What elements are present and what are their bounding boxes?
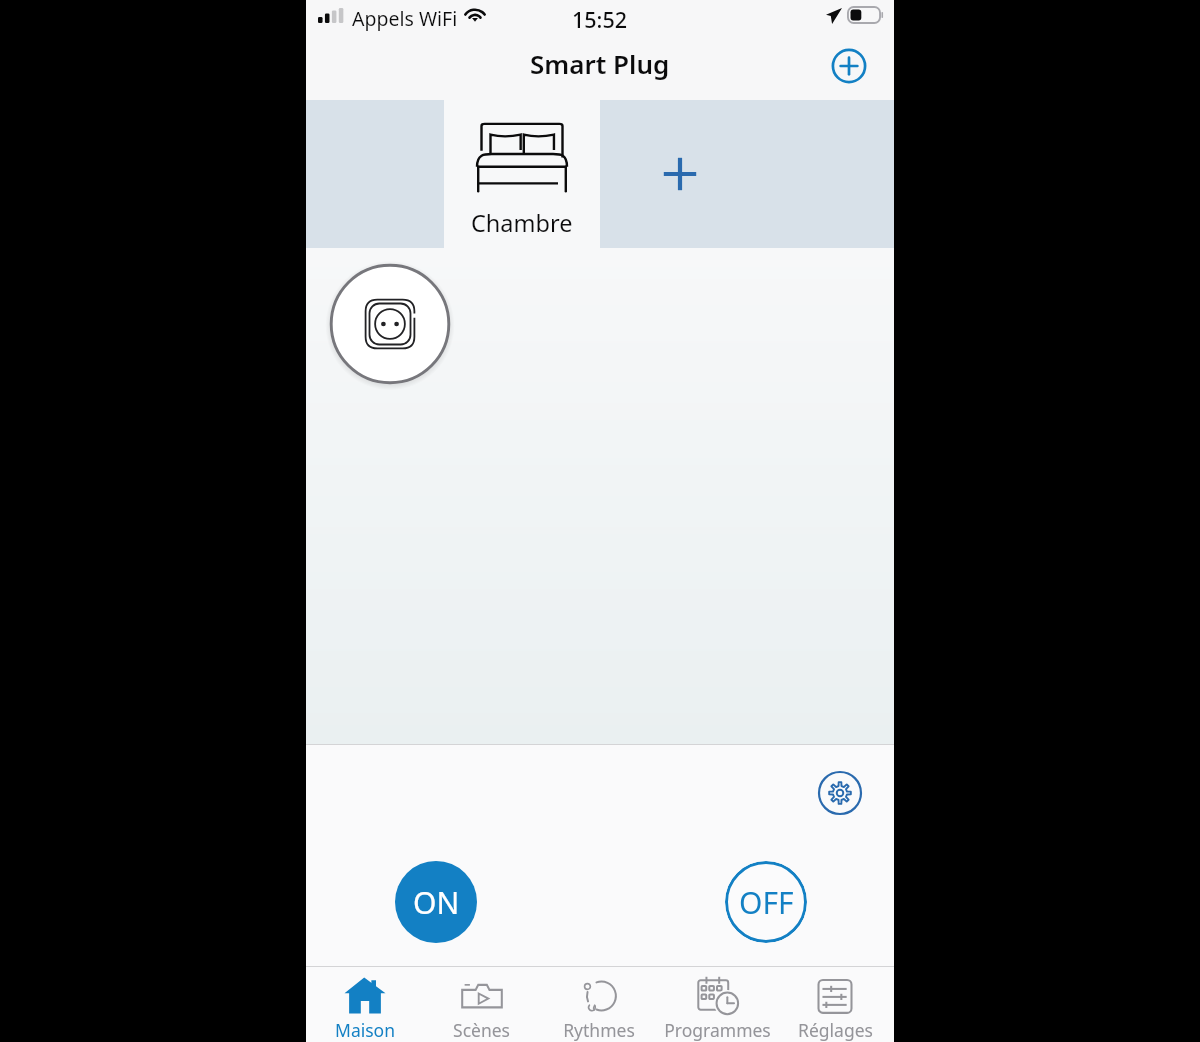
button[interactable]: Maison <box>306 967 423 1042</box>
staticText: Réglages <box>798 1018 873 1042</box>
button[interactable]: Programmes <box>658 967 776 1042</box>
button[interactable]: Scènes <box>423 967 540 1042</box>
staticText: Programmes <box>664 1018 771 1042</box>
button[interactable]: Chambre <box>444 100 600 248</box>
button[interactable]: ON <box>395 861 477 943</box>
staticText: Smart Plug <box>530 46 670 81</box>
button[interactable]: Add room <box>600 100 894 248</box>
button[interactable]: Réglages <box>776 967 894 1042</box>
staticText: ON <box>413 882 460 923</box>
button[interactable]: Add <box>829 46 869 86</box>
staticText: Scènes <box>453 1018 510 1042</box>
button[interactable]: Smart plug device <box>328 262 452 386</box>
staticText: Rythmes <box>563 1018 635 1042</box>
staticText: Chambre <box>471 207 573 239</box>
staticText: OFF <box>739 882 794 923</box>
button[interactable]: Rythmes <box>540 967 658 1042</box>
staticText: Maison <box>335 1018 395 1042</box>
staticText: 15:52 <box>572 5 628 34</box>
staticText: Appels WiFi <box>352 5 458 32</box>
button[interactable]: Settings <box>817 770 863 816</box>
button[interactable]: OFF <box>725 861 807 943</box>
